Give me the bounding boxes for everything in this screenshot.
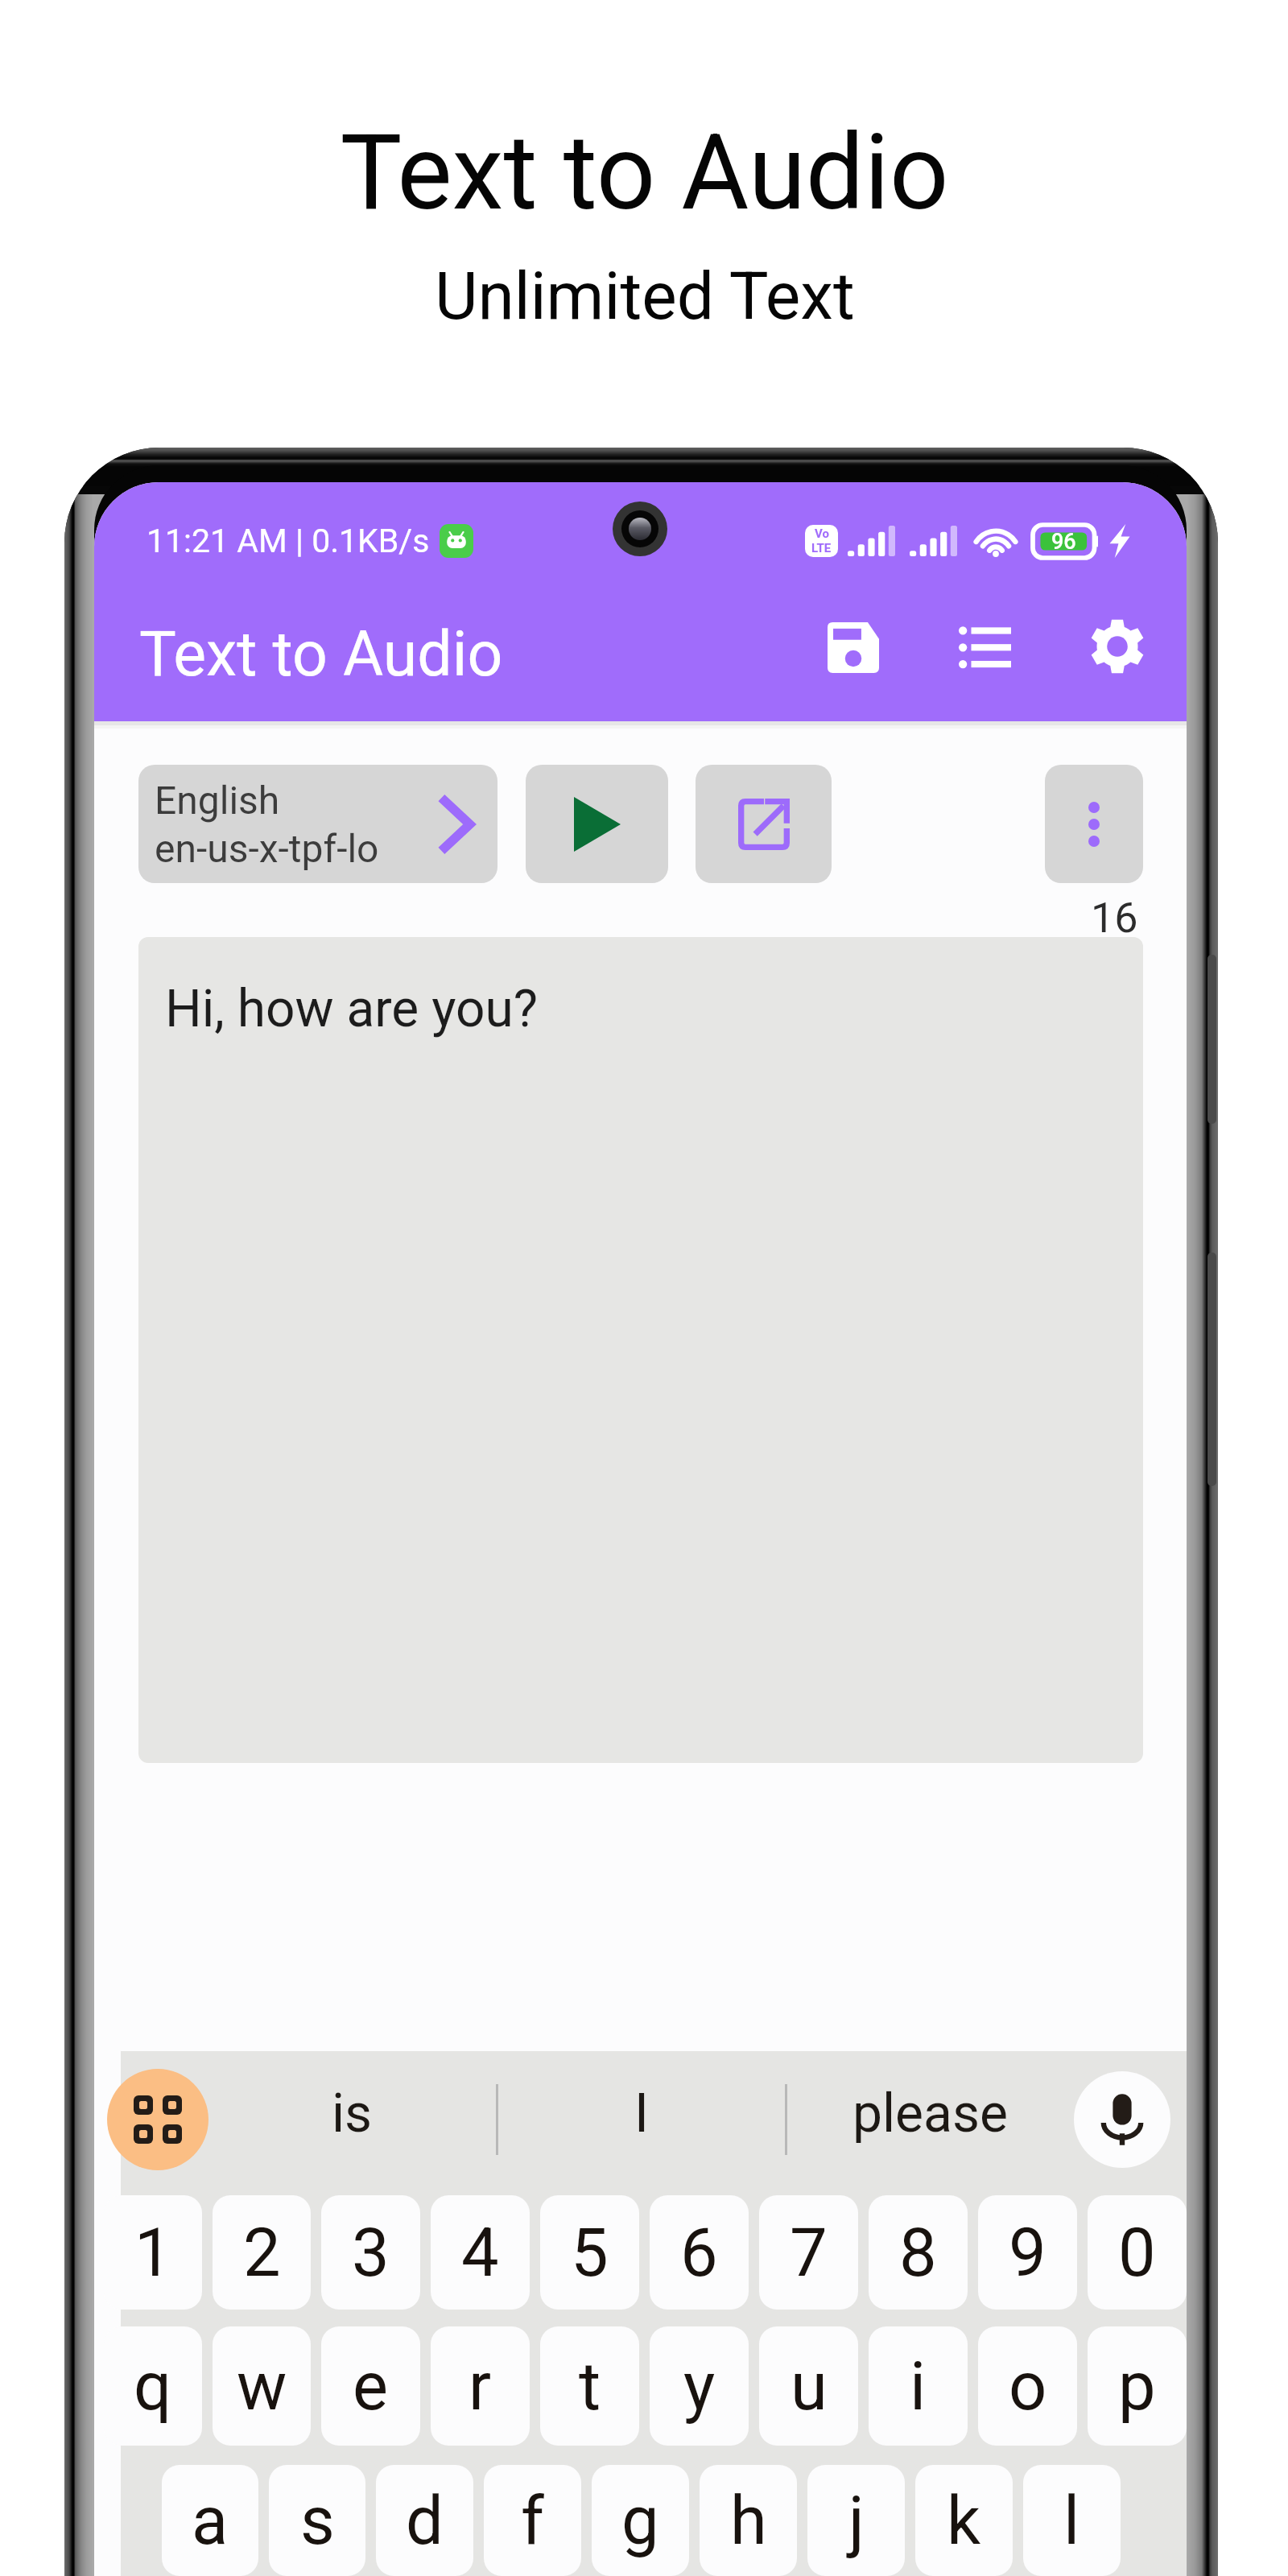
button[interactable]: 1 bbox=[104, 2195, 202, 2310]
staticText: Unlimited Text bbox=[435, 258, 855, 335]
button[interactable]: 4 bbox=[431, 2195, 530, 2310]
button[interactable]: e bbox=[321, 2326, 420, 2446]
staticText: f bbox=[521, 2482, 544, 2560]
button[interactable]: Hi, how are you? bbox=[138, 937, 1143, 1763]
button[interactable]: g bbox=[592, 2465, 689, 2576]
button[interactable]: 7 bbox=[759, 2195, 858, 2310]
staticText: 6 bbox=[680, 2214, 718, 2292]
staticText: 0 bbox=[1118, 2214, 1156, 2292]
button[interactable]: p bbox=[1088, 2326, 1187, 2446]
button[interactable]: Settings bbox=[1072, 601, 1162, 691]
button[interactable]: i bbox=[869, 2326, 968, 2446]
staticText: r bbox=[469, 2347, 492, 2425]
button[interactable]: History list bbox=[939, 602, 1030, 692]
button[interactable]: o bbox=[978, 2326, 1077, 2446]
staticText: i bbox=[910, 2347, 927, 2425]
staticText: Vo bbox=[815, 526, 829, 541]
staticText: en-us-x-tpf-lo bbox=[155, 826, 379, 871]
button[interactable]: Keyboard menu bbox=[107, 2069, 208, 2170]
staticText: 7 bbox=[790, 2214, 828, 2292]
staticText: d bbox=[406, 2482, 444, 2560]
button[interactable]: 3 bbox=[321, 2195, 420, 2310]
staticText: a bbox=[192, 2482, 229, 2560]
staticText: o bbox=[1009, 2347, 1047, 2425]
button[interactable]: y bbox=[650, 2326, 749, 2446]
staticText: is bbox=[332, 2083, 373, 2145]
button[interactable]: q bbox=[104, 2326, 202, 2446]
button[interactable]: 9 bbox=[978, 2195, 1077, 2310]
button[interactable]: h bbox=[700, 2465, 797, 2576]
staticText: Text to Audio bbox=[340, 112, 949, 233]
staticText: w bbox=[237, 2347, 287, 2425]
staticText: 4 bbox=[461, 2214, 499, 2292]
button[interactable]: please bbox=[787, 2051, 1074, 2187]
button[interactable]: d bbox=[376, 2465, 473, 2576]
staticText: t bbox=[579, 2347, 601, 2425]
button[interactable]: r bbox=[431, 2326, 530, 2446]
staticText: 1 bbox=[134, 2214, 172, 2292]
button[interactable]: I bbox=[498, 2051, 785, 2187]
staticText: 3 bbox=[352, 2214, 390, 2292]
button[interactable]: is bbox=[208, 2051, 496, 2187]
staticText: y bbox=[683, 2347, 716, 2425]
staticText: u bbox=[791, 2347, 828, 2425]
staticText: 5 bbox=[571, 2214, 609, 2292]
button[interactable]: 0 bbox=[1088, 2195, 1187, 2310]
button[interactable]: Save bbox=[808, 602, 898, 692]
button[interactable]: k bbox=[915, 2465, 1013, 2576]
staticText: 96 bbox=[1051, 529, 1076, 555]
button[interactable]: More options bbox=[1045, 765, 1143, 883]
staticText: 8 bbox=[899, 2214, 937, 2292]
button[interactable]: 8 bbox=[869, 2195, 968, 2310]
staticText: 2 bbox=[243, 2214, 281, 2292]
staticText: LTE bbox=[811, 541, 832, 555]
staticText: 16 bbox=[1091, 894, 1138, 943]
staticText: q bbox=[134, 2347, 172, 2425]
staticText: Hi, how are you? bbox=[165, 979, 538, 1039]
staticText: please bbox=[852, 2083, 1009, 2145]
button[interactable]: f bbox=[484, 2465, 581, 2576]
staticText: l bbox=[1063, 2482, 1080, 2560]
staticText: 9 bbox=[1009, 2214, 1046, 2292]
staticText: e bbox=[353, 2347, 389, 2425]
button[interactable]: s bbox=[269, 2465, 365, 2576]
staticText: Text to Audio bbox=[139, 618, 503, 691]
button[interactable]: Voice input bbox=[1074, 2071, 1170, 2168]
button[interactable]: 2 bbox=[213, 2195, 311, 2310]
staticText: j bbox=[848, 2482, 865, 2560]
button[interactable]: j bbox=[807, 2465, 905, 2576]
button[interactable]: English bbox=[138, 765, 497, 883]
button[interactable]: w bbox=[213, 2326, 311, 2446]
staticText: English bbox=[155, 778, 280, 823]
staticText: 11:21 AM | 0.1KB/s bbox=[147, 522, 430, 560]
staticText: I bbox=[634, 2083, 649, 2145]
button[interactable]: a bbox=[162, 2465, 258, 2576]
button[interactable]: Play bbox=[526, 765, 668, 883]
staticText: k bbox=[947, 2482, 981, 2560]
button[interactable]: l bbox=[1023, 2465, 1121, 2576]
button[interactable]: t bbox=[540, 2326, 639, 2446]
button[interactable]: Open in new window bbox=[696, 765, 832, 883]
staticText: g bbox=[621, 2482, 659, 2560]
staticText: h bbox=[730, 2482, 767, 2560]
button[interactable]: 5 bbox=[540, 2195, 639, 2310]
staticText: s bbox=[300, 2482, 335, 2560]
staticText: p bbox=[1118, 2347, 1156, 2425]
button[interactable]: 6 bbox=[650, 2195, 749, 2310]
button[interactable]: u bbox=[759, 2326, 858, 2446]
